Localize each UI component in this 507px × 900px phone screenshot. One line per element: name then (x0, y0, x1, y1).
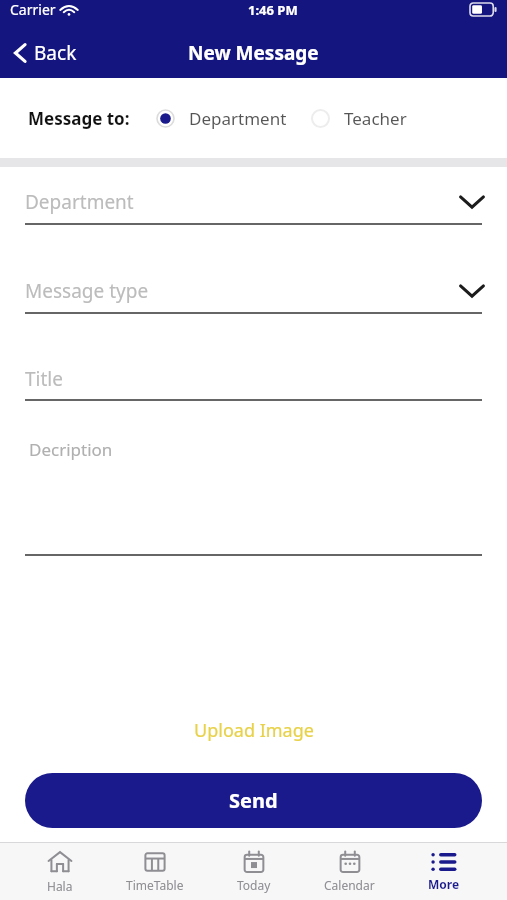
button[interactable]: Teacher (311, 107, 407, 130)
other: TimeTable (143, 850, 167, 874)
staticText: Message type (25, 278, 149, 304)
button[interactable]: TimeTable (120, 846, 190, 897)
staticText: Decription (29, 438, 113, 461)
staticText: Hala (47, 878, 73, 894)
button[interactable]: Hala (41, 845, 79, 898)
button[interactable]: Title (0, 359, 507, 399)
button[interactable]: More (422, 847, 466, 896)
button[interactable]: Department (0, 181, 507, 223)
staticText: Teacher (344, 107, 407, 130)
other: Today (242, 850, 266, 874)
staticText: 1:46 PM (248, 1, 298, 19)
other: Hala (47, 849, 73, 875)
button[interactable]: Upload Image (0, 710, 507, 751)
staticText: Title (25, 366, 63, 392)
button[interactable]: Message type (0, 270, 507, 312)
staticText: Upload Image (194, 718, 314, 743)
staticText: Department (25, 189, 134, 215)
button[interactable]: Back (0, 34, 91, 72)
button[interactable]: Department (156, 107, 287, 130)
button[interactable]: Calendar (318, 846, 381, 897)
staticText: Department (189, 107, 287, 130)
staticText: Today (237, 877, 271, 893)
button[interactable]: Decription (0, 426, 507, 554)
other: More (431, 851, 457, 873)
staticText: Message to: (28, 107, 130, 130)
staticText: Calendar (324, 877, 375, 893)
staticText: More (428, 876, 460, 892)
staticText: Carrier (10, 0, 56, 19)
button[interactable]: Send (25, 773, 482, 828)
staticText: Back (34, 40, 77, 66)
other: Calendar (338, 850, 362, 874)
button[interactable]: Today (231, 846, 277, 897)
staticText: TimeTable (126, 877, 184, 893)
staticText: Send (229, 787, 278, 814)
staticText: New Message (188, 40, 319, 66)
